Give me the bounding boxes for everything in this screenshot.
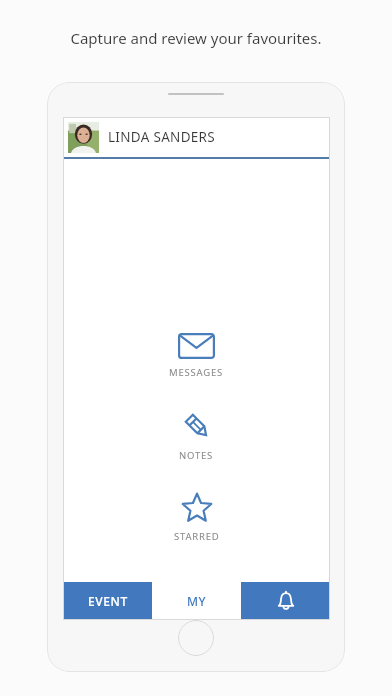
staticText: EVENT <box>88 593 128 609</box>
button[interactable]: EVENT <box>63 582 152 620</box>
staticText: MESSAGES <box>169 366 224 379</box>
button[interactable]: MY <box>152 582 241 620</box>
staticText: NOTES <box>179 449 214 462</box>
button[interactable]: Notes <box>155 408 238 464</box>
staticText: LINDA SANDERS <box>108 128 215 146</box>
staticText: Capture and review your favourites. <box>70 28 322 48</box>
staticText: STARRED <box>174 530 220 543</box>
staticText: MY <box>187 593 207 609</box>
button[interactable]: Notifications <box>241 582 330 620</box>
button[interactable]: Starred <box>150 491 244 545</box>
button[interactable]: Messages <box>145 331 248 381</box>
button[interactable]: LINDA SANDERS <box>63 117 330 157</box>
button[interactable]: Home <box>178 620 214 656</box>
